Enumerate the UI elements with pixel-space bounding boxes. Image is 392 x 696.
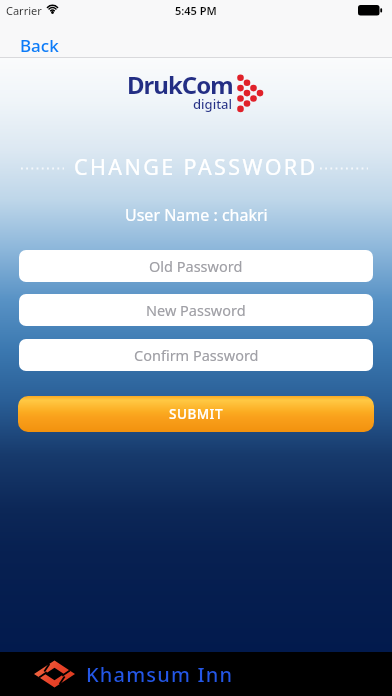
staticText: SUBMIT	[169, 405, 223, 423]
staticText: digital	[193, 95, 233, 113]
staticText: Khamsum Inn	[86, 661, 234, 688]
staticText: Old Password	[149, 256, 243, 276]
button[interactable]: Back	[12, 26, 67, 65]
staticText: CHANGE PASSWORD	[74, 152, 318, 181]
button[interactable]: New Password	[19, 294, 373, 326]
button[interactable]: Confirm Password	[19, 339, 373, 371]
button[interactable]: SUBMIT	[18, 396, 374, 432]
staticText: Back	[20, 34, 59, 57]
button[interactable]: Old Password	[19, 250, 373, 282]
button[interactable]: Khamsum Inn	[0, 652, 392, 696]
staticText: 5:45 PM	[175, 3, 217, 18]
staticText: User Name : chakri	[125, 204, 268, 226]
staticText: DrukCom	[127, 68, 233, 101]
staticText: Carrier	[6, 3, 42, 18]
staticText: Confirm Password	[134, 345, 259, 365]
staticText: New Password	[146, 300, 246, 320]
